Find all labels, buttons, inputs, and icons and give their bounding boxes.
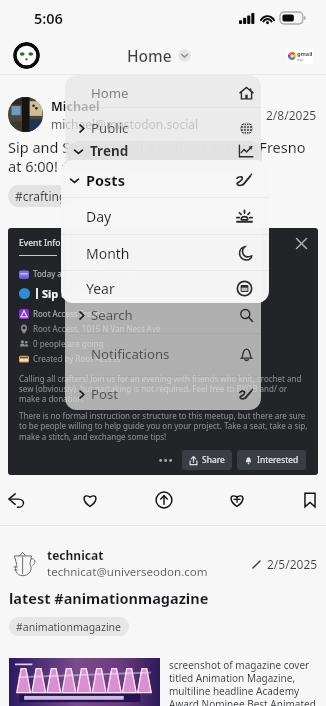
- staticText: Share: [202, 454, 225, 466]
- staticText: technicat@universeodon.com: [47, 564, 208, 580]
- staticText: There is no formal instruction or struct…: [19, 410, 308, 443]
- staticText: Year: [86, 279, 115, 298]
- button[interactable]: Favourite: [75, 485, 105, 515]
- button[interactable]: Interested: [222, 485, 252, 515]
- staticText: #animationmagazine: [16, 620, 122, 634]
- staticText: Post: [91, 385, 119, 403]
- button[interactable]: Day: [61, 199, 269, 233]
- button[interactable]: Interested: [237, 450, 306, 470]
- button[interactable]: More options: [153, 454, 178, 467]
- button[interactable]: Public: [65, 111, 261, 145]
- staticText: Created by Root Access: [33, 353, 121, 364]
- staticText: Month: [86, 244, 130, 263]
- button[interactable]: #crafting: [8, 185, 74, 207]
- button[interactable]: Post: [65, 377, 261, 410]
- staticText: Trend: [90, 142, 129, 160]
- button[interactable]: Boost: [149, 485, 179, 515]
- staticText: Search: [91, 306, 133, 324]
- button[interactable]: Reply: [2, 485, 32, 515]
- staticText: Interested: [257, 454, 299, 466]
- staticText: Public: [91, 119, 129, 137]
- staticText: Calling all crafters! Join us for an eve…: [19, 373, 308, 404]
- staticText: Notifications: [91, 345, 170, 363]
- button[interactable]: Account: [287, 48, 313, 64]
- staticText: Today at 6:00 PM – 8:00 PM: [33, 268, 136, 279]
- staticText: latest #animationmagazine: [9, 588, 209, 608]
- button[interactable]: Bookmark: [295, 485, 325, 515]
- button[interactable]: Posts: [61, 163, 269, 197]
- staticText: Home: [127, 45, 172, 66]
- button[interactable]: Year: [61, 271, 269, 303]
- staticText: 5:06: [34, 8, 63, 28]
- button[interactable]: Month: [61, 236, 269, 270]
- button[interactable]: Profile: [13, 42, 40, 69]
- staticText: Root Access Fresno: [33, 308, 106, 319]
- staticText: Day: [86, 207, 112, 226]
- staticText: #crafting: [15, 188, 67, 204]
- staticText: michael@mastodon.social: [51, 116, 199, 132]
- staticText: Sip & Stitch: [42, 286, 104, 301]
- staticText: gmail: [297, 50, 313, 57]
- button[interactable]: Share: [182, 450, 232, 470]
- button[interactable]: Search: [65, 298, 261, 332]
- staticText: 2/8/2025: [266, 107, 317, 123]
- staticText: screenshot of magazine cover titled Anim…: [169, 658, 318, 706]
- staticText: 2/5/2025: [267, 556, 318, 572]
- staticText: ooo: [297, 57, 304, 62]
- staticText: 0 people are going: [33, 338, 104, 349]
- staticText: Root Access, 1015 N Van Ness Ave: [33, 323, 161, 334]
- staticText: Michael: [51, 98, 100, 115]
- staticText: Sip and Stitch tonight at Root Access Fr…: [8, 137, 318, 176]
- staticText: technicat: [47, 547, 104, 563]
- button[interactable]: Close: [295, 237, 308, 250]
- button[interactable]: Home: [65, 76, 261, 110]
- button[interactable]: Trend: [67, 141, 262, 167]
- button[interactable]: Notifications: [65, 337, 261, 371]
- staticText: Home: [91, 84, 129, 102]
- button[interactable]: Home: [127, 45, 191, 66]
- staticText: Event Info: [19, 237, 61, 249]
- button[interactable]: #animationmagazine: [9, 617, 129, 636]
- staticText: Posts: [86, 170, 125, 190]
